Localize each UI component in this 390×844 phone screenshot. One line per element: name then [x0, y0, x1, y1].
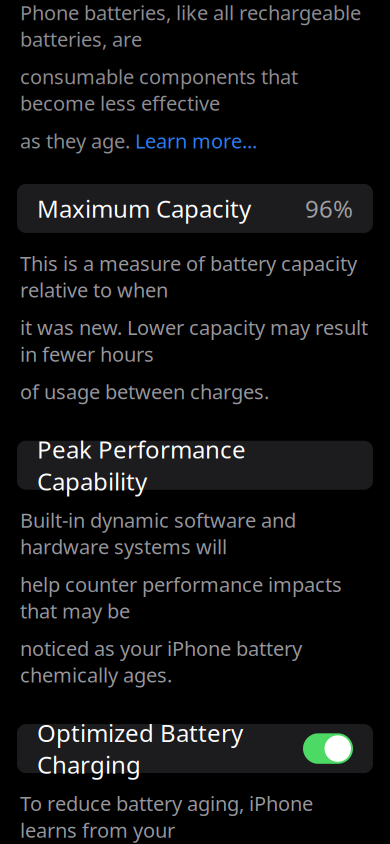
staticText: 96%: [305, 192, 353, 224]
staticText: Phone batteries, like all rechargeable b…: [20, 0, 361, 52]
staticText: Maximum Capacity: [37, 192, 251, 224]
staticText: noticed as your iPhone battery chemicall…: [20, 635, 302, 688]
staticText: as they age.: [20, 127, 135, 154]
staticText: Learn more...: [135, 127, 257, 154]
staticText: help counter performance impacts that ma…: [20, 571, 342, 624]
staticText: Peak Performance Capability: [37, 433, 246, 497]
staticText: To reduce battery aging, iPhone learns f…: [20, 790, 313, 843]
staticText: Built-in dynamic software and hardware s…: [20, 507, 296, 560]
staticText: Optimized Battery Charging: [37, 717, 243, 780]
button[interactable]: Maximum Capacity: [17, 184, 373, 233]
button[interactable]: Peak Performance Capability: [17, 441, 373, 490]
staticText: This is a measure of battery capacity re…: [20, 250, 357, 303]
staticText: of usage between charges.: [20, 378, 269, 405]
button[interactable]: Learn more...: [135, 127, 257, 154]
staticText: consumable components that become less e…: [20, 63, 298, 116]
staticText: it was new. Lower capacity may result in…: [20, 314, 368, 367]
button[interactable]: Optimized Battery Charging: [17, 724, 373, 773]
